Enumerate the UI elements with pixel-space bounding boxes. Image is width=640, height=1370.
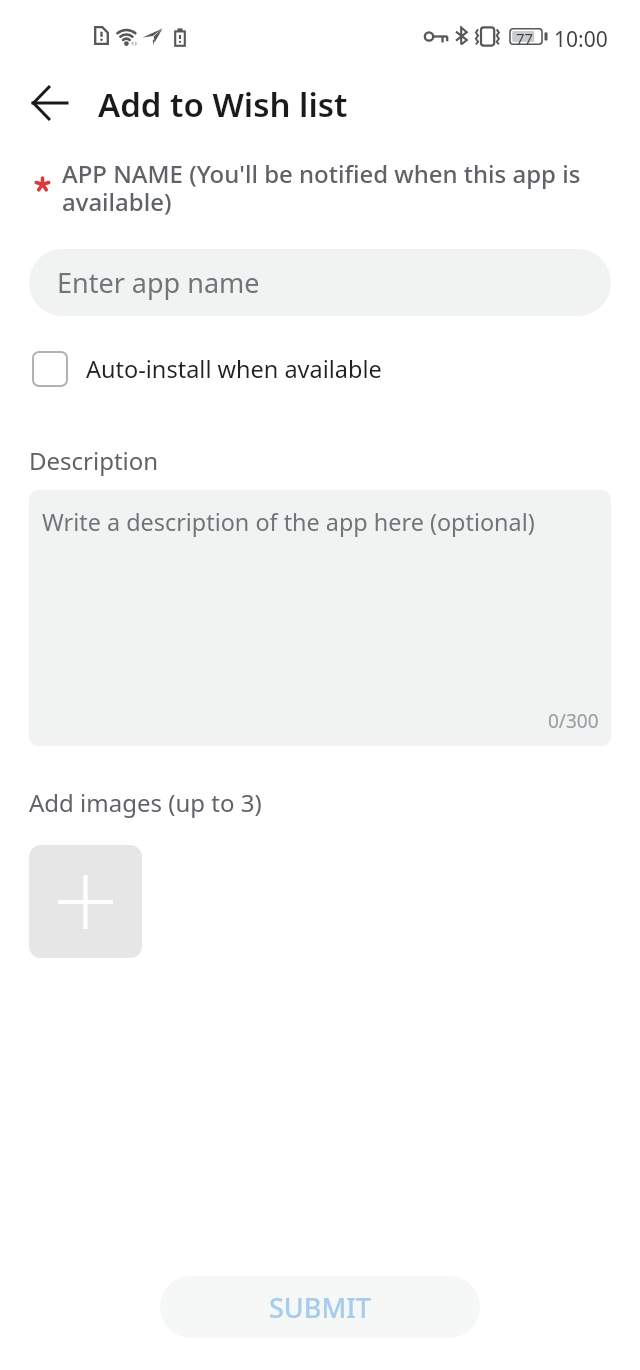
staticText: Add images (up to 3)	[29, 786, 262, 819]
staticText: Enter app name	[57, 264, 260, 301]
staticText: 10:00	[554, 25, 608, 54]
staticText: Auto-install when available	[86, 353, 382, 385]
staticText: Description	[29, 444, 159, 477]
staticText: 77	[516, 28, 534, 48]
button[interactable]: Auto-install when available	[32, 350, 382, 388]
button[interactable]: Write a description of the app here (opt…	[29, 490, 611, 746]
staticText: 0/300	[548, 708, 599, 734]
staticText: Add to Wish list	[98, 82, 348, 127]
staticText: APP NAME (You'll be notified when this a…	[62, 157, 586, 218]
button[interactable]: SUBMIT	[160, 1276, 480, 1338]
button[interactable]: Back	[14, 67, 86, 139]
button[interactable]: Add image	[29, 845, 142, 958]
staticText: SUBMIT	[269, 1289, 371, 1326]
staticText: Write a description of the app here (opt…	[42, 506, 535, 538]
button[interactable]: Enter app name	[29, 249, 611, 316]
